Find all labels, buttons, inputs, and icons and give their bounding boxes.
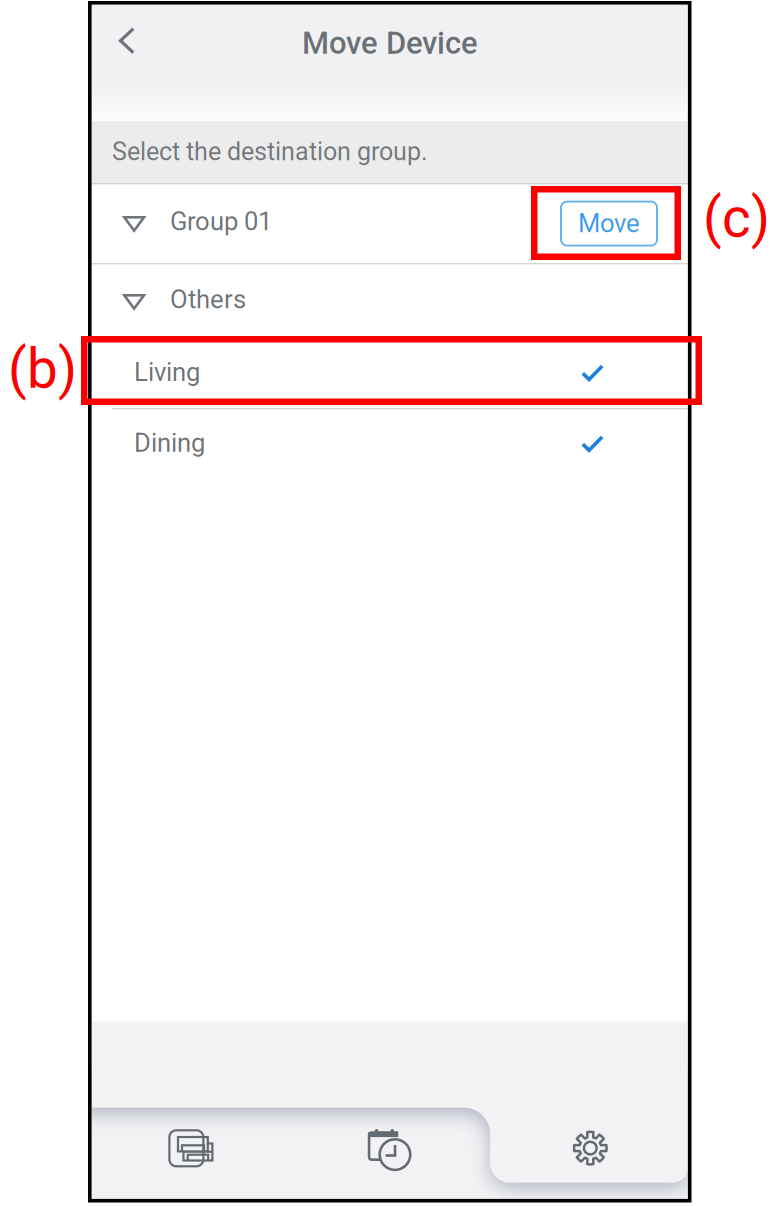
button[interactable]: Move (561, 202, 657, 246)
staticText: Others (170, 285, 246, 315)
staticText: Select the destination group. (112, 137, 428, 166)
staticText: Dining (134, 428, 205, 458)
button[interactable]: Settings (489, 1082, 688, 1199)
staticText: Living (134, 357, 200, 387)
button[interactable]: Living (92, 340, 688, 408)
staticText: Group 01 (170, 207, 272, 237)
button[interactable]: Dining (92, 410, 688, 480)
staticText: (b) (8, 337, 77, 401)
button[interactable]: Print (92, 1082, 290, 1199)
staticText: Move (578, 209, 640, 239)
staticText: (c) (703, 186, 770, 250)
button[interactable]: Schedule (290, 1082, 489, 1199)
button[interactable]: Back (96, 11, 158, 71)
staticText: Move Device (302, 25, 478, 61)
